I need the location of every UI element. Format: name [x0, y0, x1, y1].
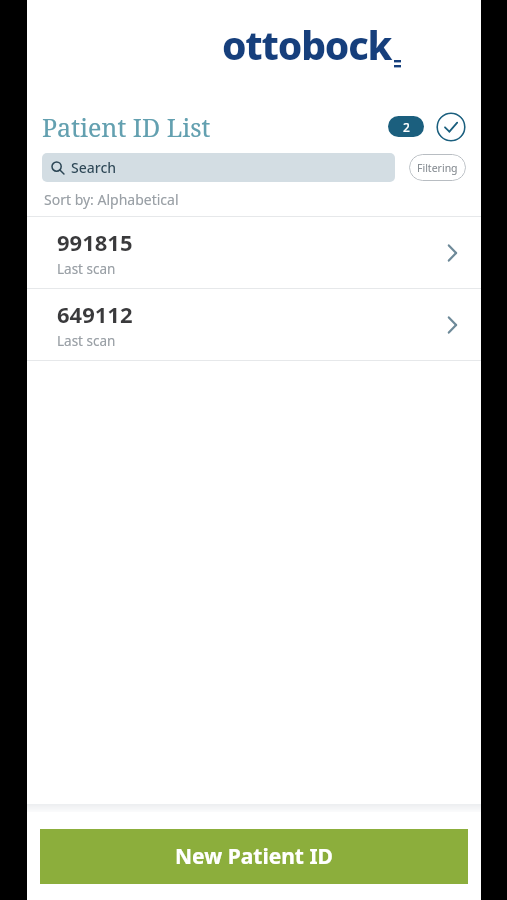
button[interactable]: Select all [436, 112, 466, 142]
staticText: 991815 [57, 227, 133, 257]
button[interactable]: New Patient ID [40, 829, 468, 884]
button[interactable]: Filtering [409, 154, 466, 181]
staticText: New Patient ID [175, 842, 333, 871]
button[interactable]: Search [42, 153, 395, 182]
staticText: Patient ID List [42, 110, 211, 144]
button[interactable]: 991815 [27, 217, 481, 288]
staticText: Filtering [417, 161, 458, 175]
staticText: Sort by: Alphabetical [44, 190, 179, 209]
staticText: Last scan [57, 260, 116, 278]
staticText: Search [71, 158, 117, 177]
button[interactable]: 2 [388, 116, 424, 137]
staticText: Last scan [57, 332, 116, 350]
button[interactable]: 649112 [27, 289, 481, 360]
staticText: 2 [403, 119, 410, 135]
staticText: ottobock [222, 18, 392, 71]
staticText: 649112 [57, 299, 133, 329]
